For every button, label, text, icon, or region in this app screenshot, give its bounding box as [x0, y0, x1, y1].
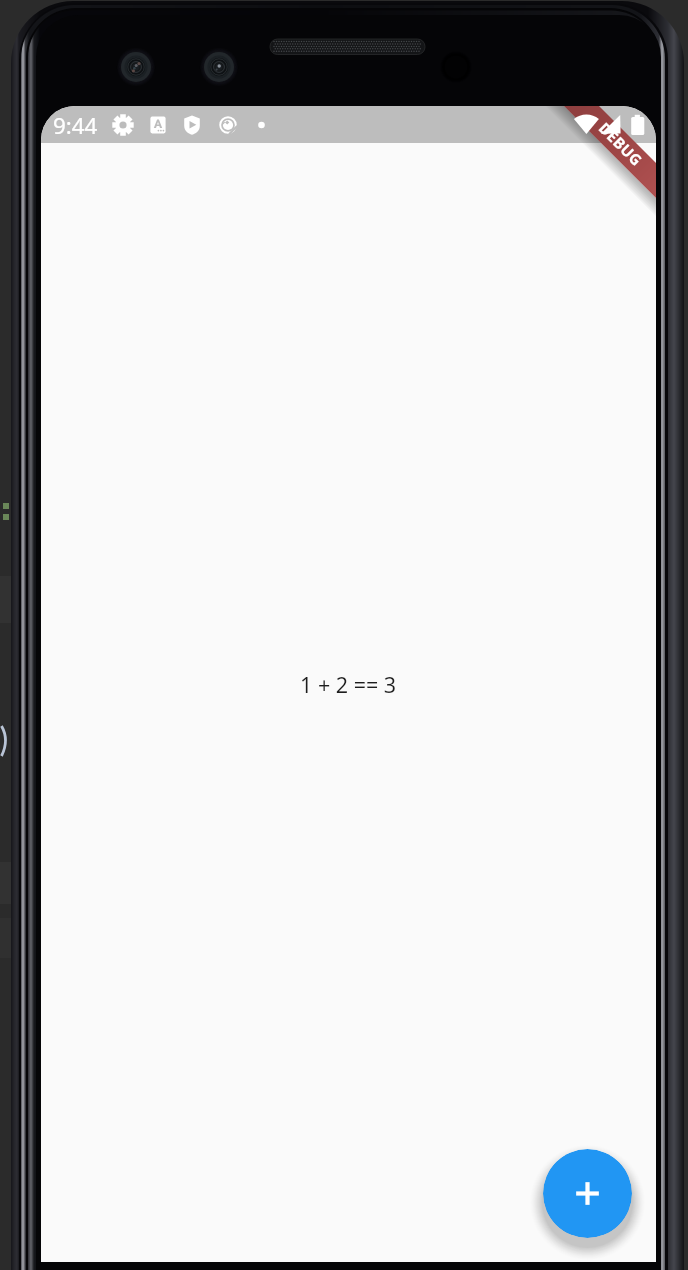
button[interactable]: Add [543, 1149, 632, 1238]
staticText: 1 + 2 == 3 [300, 670, 397, 699]
staticText: 9:44 [53, 110, 98, 141]
staticText: DEBUG [595, 118, 647, 170]
